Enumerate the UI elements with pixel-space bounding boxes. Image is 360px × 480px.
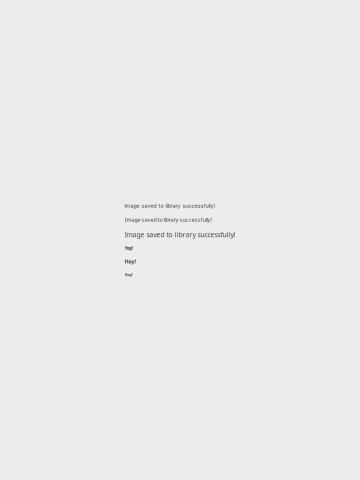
staticText: Image saved to library successfully!	[124, 216, 211, 223]
staticText: Image saved to library successfully!	[124, 230, 235, 239]
staticText: Hey!	[124, 246, 132, 251]
staticText: Hey!	[124, 258, 136, 265]
staticText: Image saved to library successfully!	[124, 203, 215, 209]
staticText: Hey!	[124, 272, 132, 277]
